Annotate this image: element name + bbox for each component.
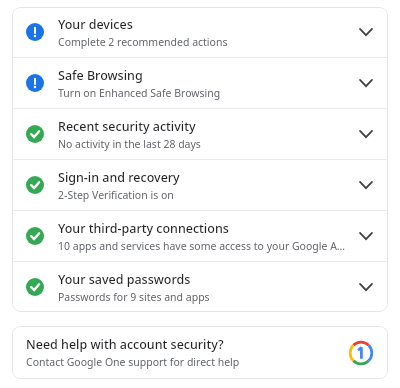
- staticText: Your saved passwords: [58, 271, 191, 288]
- button[interactable]: Sign-in and recovery: [12, 160, 388, 210]
- other: Expand: [356, 22, 376, 42]
- staticText: No activity in the last 28 days: [58, 137, 201, 151]
- button[interactable]: Your saved passwords: [12, 262, 388, 312]
- staticText: Recent security activity: [58, 118, 196, 135]
- button[interactable]: Your devices: [12, 7, 388, 57]
- staticText: 10 apps and services have some access to…: [58, 239, 348, 253]
- button[interactable]: Safe Browsing: [12, 58, 388, 108]
- button[interactable]: Need help with account security?: [12, 326, 388, 379]
- staticText: Contact Google One support for direct he…: [26, 355, 240, 369]
- other: Expand: [356, 277, 376, 297]
- staticText: Sign-in and recovery: [58, 169, 180, 186]
- staticText: Complete 2 recommended actions: [58, 35, 228, 49]
- staticText: Safe Browsing: [58, 67, 143, 84]
- other: Google One: [348, 340, 374, 366]
- other: Expand: [356, 124, 376, 144]
- staticText: Need help with account security?: [26, 336, 224, 353]
- staticText: Turn on Enhanced Safe Browsing: [58, 86, 221, 100]
- other: Expand: [356, 175, 376, 195]
- button[interactable]: Your third-party connections: [12, 211, 388, 261]
- staticText: Passwords for 9 sites and apps: [58, 290, 210, 304]
- staticText: Your devices: [58, 16, 133, 33]
- staticText: Your third-party connections: [58, 220, 229, 237]
- other: Expand: [356, 226, 376, 246]
- staticText: 2-Step Verification is on: [58, 188, 174, 202]
- other: Expand: [356, 73, 376, 93]
- button[interactable]: Recent security activity: [12, 109, 388, 159]
